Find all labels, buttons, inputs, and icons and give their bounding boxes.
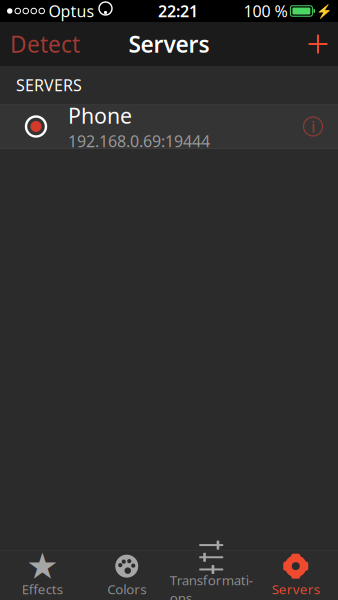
staticText: Servers	[272, 580, 320, 598]
button[interactable]: Transformations	[169, 551, 253, 600]
button[interactable]: ★	[0, 551, 84, 600]
staticText: SERVERS	[16, 74, 82, 96]
staticText: Effects	[22, 580, 63, 598]
staticText: 100 %	[243, 0, 287, 22]
staticText: 22:21	[158, 0, 198, 22]
staticText: ⚡	[316, 3, 333, 19]
staticText: i	[311, 116, 315, 137]
staticText: Servers	[128, 29, 209, 59]
button[interactable]: Colors	[84, 551, 169, 600]
button[interactable]: Detect	[0, 22, 90, 66]
staticText: Colors	[107, 580, 146, 598]
button[interactable]: Servers	[253, 551, 338, 600]
staticText: Optus	[48, 0, 94, 22]
button[interactable]: Add server	[298, 22, 338, 66]
button[interactable]: Phone	[0, 104, 338, 149]
staticText: Detect	[10, 29, 80, 59]
staticText: Phone	[68, 101, 132, 129]
staticText: ★	[26, 546, 58, 587]
staticText: 192.168.0.69:19444	[68, 130, 210, 152]
staticText: Transformations	[170, 571, 253, 600]
